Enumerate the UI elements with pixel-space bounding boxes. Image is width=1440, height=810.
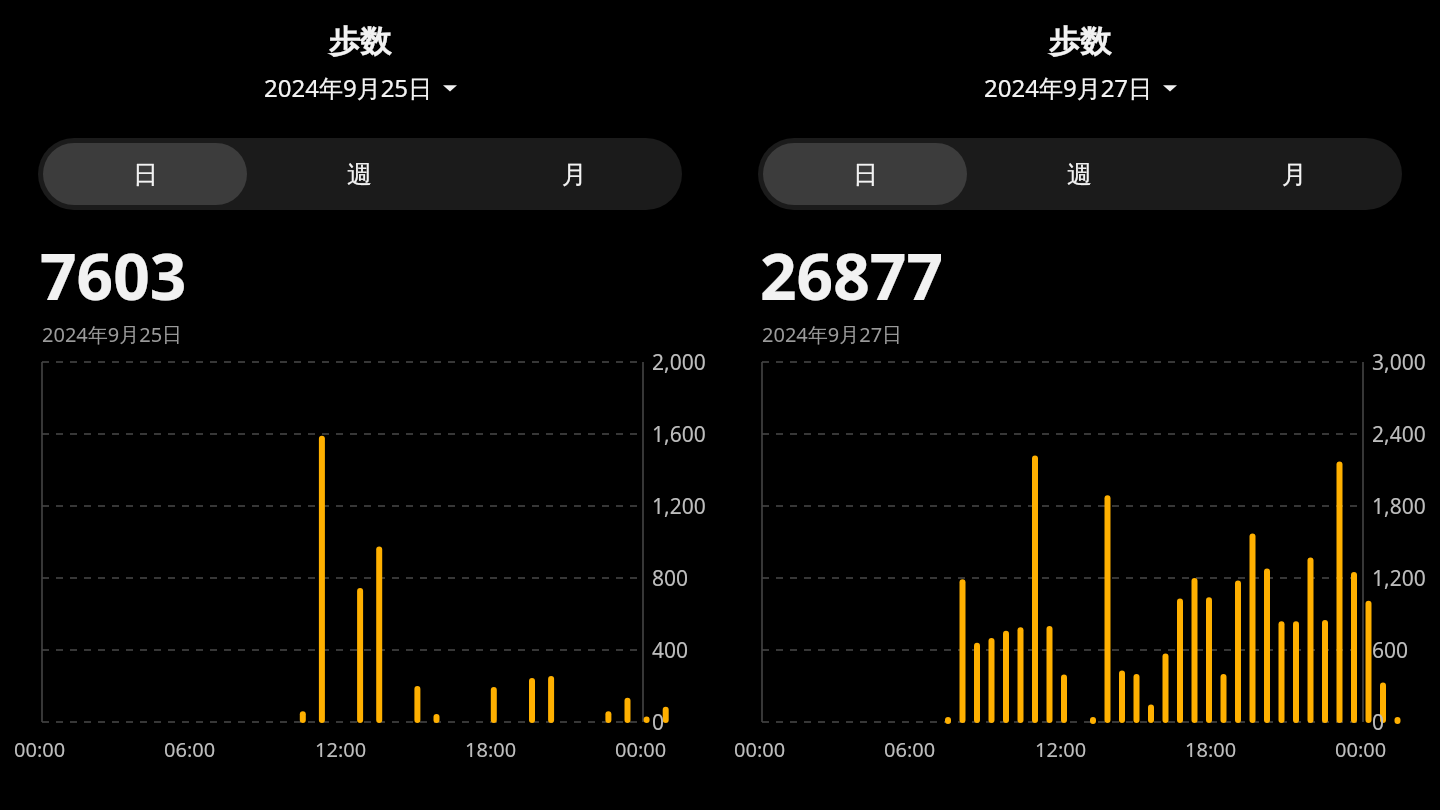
staticText: 1,200	[1372, 564, 1426, 593]
staticText: 12:00	[1035, 736, 1087, 763]
staticText: 1,600	[652, 420, 706, 449]
button[interactable]: 月	[472, 143, 677, 205]
button[interactable]: 2024年9月25日	[260, 69, 461, 106]
staticText: 2024年9月27日	[984, 71, 1153, 104]
button[interactable]: 週	[977, 143, 1182, 205]
staticText: 12:00	[315, 736, 367, 763]
staticText: 月	[562, 159, 587, 190]
staticText: 00:00	[14, 736, 66, 763]
staticText: 00:00	[734, 736, 786, 763]
staticText: 2,000	[652, 348, 706, 377]
staticText: 1,800	[1372, 492, 1426, 521]
staticText: 18:00	[1185, 736, 1237, 763]
button[interactable]: 日	[763, 143, 967, 205]
staticText: 06:00	[884, 736, 936, 763]
staticText: 日	[133, 159, 158, 190]
staticText: 0	[652, 708, 665, 737]
staticText: 2024年9月25日	[264, 71, 433, 104]
staticText: 日	[853, 159, 878, 190]
button[interactable]: 2024年9月27日	[980, 69, 1181, 106]
staticText: 3,000	[1372, 348, 1426, 377]
staticText: 06:00	[164, 736, 216, 763]
button[interactable]: 月	[1192, 143, 1397, 205]
staticText: 2024年9月27日	[762, 321, 903, 348]
staticText: 0	[1372, 708, 1385, 737]
staticText: 2,400	[1372, 420, 1426, 449]
staticText: 1,200	[652, 492, 706, 521]
staticText: 00:00	[615, 736, 667, 763]
staticText: 歩数	[1049, 22, 1111, 61]
button[interactable]: 週	[257, 143, 462, 205]
staticText: 26877	[760, 232, 944, 319]
staticText: 週	[1067, 159, 1092, 190]
staticText: 400	[652, 636, 689, 665]
staticText: 歩数	[329, 22, 391, 61]
staticText: 週	[347, 159, 372, 190]
staticText: 7603	[40, 232, 187, 319]
staticText: 800	[652, 564, 689, 593]
staticText: 月	[1282, 159, 1307, 190]
staticText: 00:00	[1335, 736, 1387, 763]
button[interactable]: 日	[43, 143, 247, 205]
staticText: 600	[1372, 636, 1409, 665]
staticText: 2024年9月25日	[42, 321, 183, 348]
staticText: 18:00	[465, 736, 517, 763]
